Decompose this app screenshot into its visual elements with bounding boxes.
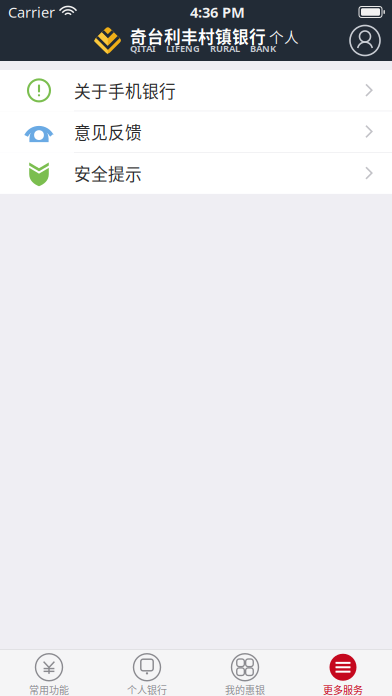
staticText: 个人 (269, 26, 299, 47)
staticText: 意见反馈 (74, 120, 142, 144)
staticText: Carrier (8, 2, 55, 22)
staticText: QITAI LIFENG RURAL BANK (130, 42, 276, 55)
staticText: 安全提示 (74, 161, 142, 185)
button[interactable]: 安全提示 (0, 153, 392, 194)
button[interactable]: 关于手机银行 (0, 70, 392, 111)
button[interactable]: 意见反馈 (0, 111, 392, 153)
staticText: 我的惠银 (225, 682, 265, 696)
button[interactable]: 个人银行 (98, 648, 196, 696)
staticText: 奇台利丰村镇银行 (130, 24, 266, 48)
staticText: 常用功能 (29, 682, 69, 696)
staticText: 4:36 PM (190, 2, 245, 22)
button[interactable]: 我的惠银 (196, 648, 294, 696)
staticText: 关于手机银行 (74, 78, 176, 102)
button[interactable]: 常用功能 (0, 648, 98, 696)
button[interactable]: Profile (350, 25, 392, 55)
button[interactable]: 更多服务 (294, 648, 392, 696)
staticText: 更多服务 (323, 682, 363, 696)
staticText: 个人银行 (127, 682, 167, 696)
